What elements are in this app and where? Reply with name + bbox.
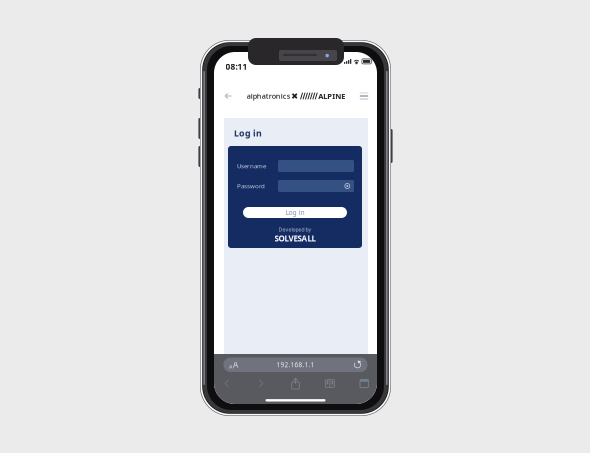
staticText: Log in bbox=[234, 127, 262, 139]
staticText: SOLVESALL bbox=[274, 233, 315, 244]
staticText: A bbox=[229, 363, 232, 370]
button[interactable]: Tabs bbox=[347, 373, 381, 393]
staticText: A bbox=[233, 359, 238, 370]
staticText: ALPINE bbox=[318, 91, 345, 101]
staticText: alphatronics bbox=[247, 91, 290, 101]
button[interactable]: Reload bbox=[347, 358, 367, 371]
staticText: Username bbox=[237, 162, 266, 170]
button[interactable]: Menu bbox=[357, 89, 371, 103]
button[interactable]: Bookmarks bbox=[313, 373, 347, 393]
staticText: Log in bbox=[285, 208, 304, 217]
staticText: Password bbox=[237, 182, 265, 190]
button[interactable]: Text size bbox=[223, 358, 243, 371]
button[interactable]: Share bbox=[278, 373, 313, 393]
staticText: Developed by bbox=[278, 226, 311, 233]
staticText: 08:11 bbox=[225, 61, 247, 72]
button[interactable]: Log in bbox=[243, 207, 347, 218]
staticText: 192.168.1.1 bbox=[276, 360, 314, 369]
button[interactable]: Back bbox=[209, 373, 244, 393]
button[interactable]: Back bbox=[221, 89, 235, 103]
